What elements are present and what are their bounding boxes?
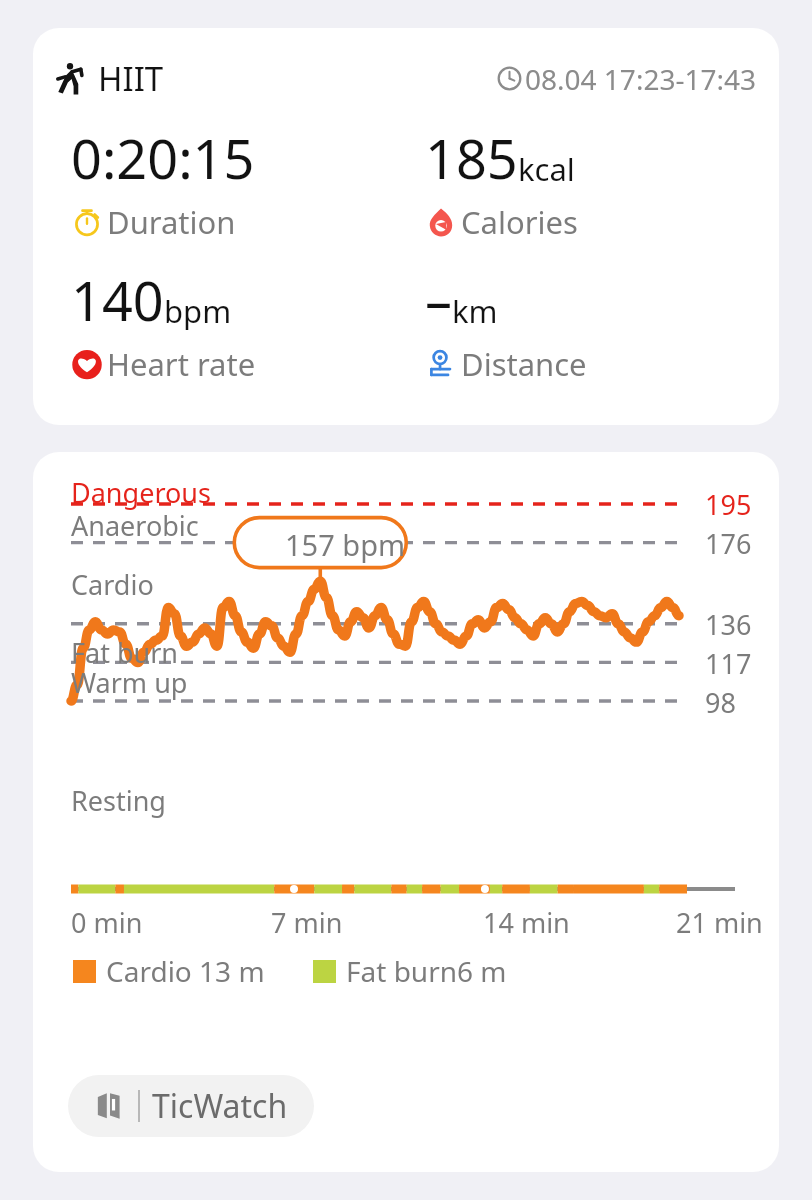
button[interactable]: 0:20:15 [71, 121, 425, 243]
button[interactable]: TicWatch [68, 1075, 314, 1137]
button[interactable]: Cardio 13 m [73, 952, 265, 990]
staticText: 7 min [271, 904, 343, 941]
staticText: Fat burn6 m [346, 952, 507, 990]
button[interactable]: Fat burn6 m [313, 952, 507, 990]
staticText: 185 [425, 121, 518, 195]
staticText: HIIT [98, 56, 164, 101]
staticText: 0:20:15 [71, 121, 255, 195]
staticText: Heart rate [107, 343, 256, 385]
staticText: 140 [71, 263, 164, 337]
staticText: km [452, 290, 498, 332]
button[interactable]: 185 [425, 121, 779, 243]
staticText: 117 [705, 645, 752, 682]
staticText: 14 min [483, 904, 570, 941]
button[interactable]: 195 [33, 452, 779, 1172]
button[interactable]: – [425, 263, 779, 385]
staticText: 98 [705, 684, 736, 721]
staticText: 176 [705, 525, 752, 562]
staticText: 195 [705, 486, 752, 523]
button[interactable]: HIIT [33, 28, 779, 425]
button[interactable]: 140 [71, 263, 425, 385]
staticText: 08.04 17:23-17:43 [525, 60, 757, 98]
staticText: – [425, 263, 452, 337]
staticText: bpm [164, 290, 232, 332]
staticText: 0 min [71, 904, 143, 941]
staticText: Anaerobic [71, 507, 199, 544]
staticText: Duration [107, 201, 236, 243]
staticText: Fat burn [71, 634, 179, 671]
staticText: Resting [71, 782, 166, 819]
staticText: 157 bpm [285, 525, 406, 564]
staticText: TicWatch [152, 1084, 288, 1128]
staticText: Cardio 13 m [106, 952, 265, 990]
staticText: Dangerous [71, 474, 211, 511]
staticText: 136 [705, 606, 752, 643]
staticText: Calories [461, 201, 578, 243]
staticText: Cardio [71, 566, 154, 603]
staticText: Warm up [71, 664, 188, 701]
staticText: 21 min [676, 904, 763, 941]
staticText: Distance [461, 343, 587, 385]
staticText: kcal [518, 148, 575, 190]
